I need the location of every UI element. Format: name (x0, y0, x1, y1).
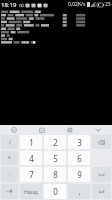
staticText: 5 (53, 153, 58, 164)
button[interactable]: Clipboard (28, 125, 56, 134)
button[interactable]: 6 (68, 151, 90, 165)
staticText: 0 (53, 186, 58, 197)
staticText: 8 (53, 169, 58, 180)
staticText: 3 (77, 137, 82, 148)
staticText: 1 (29, 137, 34, 148)
button[interactable]: 7 (20, 167, 42, 182)
button[interactable]: 0 (44, 184, 66, 199)
staticText: 18:19 (1, 1, 17, 9)
button[interactable]: 2 (44, 135, 66, 149)
button[interactable]: 4 (20, 151, 42, 165)
staticText: * (8, 155, 11, 162)
staticText: 6 (77, 153, 82, 164)
button[interactable]: / (1, 135, 18, 149)
staticText: 0,02К/s (68, 1, 86, 8)
button[interactable]: Space (92, 167, 111, 182)
staticText: . (78, 186, 81, 197)
button[interactable]: Settings (56, 125, 84, 134)
button[interactable]: 1 (20, 135, 42, 149)
button[interactable]: Назад (20, 184, 42, 199)
button[interactable]: Hide keyboard (84, 125, 112, 134)
button[interactable]: 5 (44, 151, 66, 165)
button[interactable]: 3 (68, 135, 90, 149)
staticText: 7 (29, 169, 34, 180)
staticText: 9 (77, 169, 82, 180)
staticText: 23 (105, 1, 111, 8)
staticText: - (9, 171, 11, 178)
button[interactable]: Backspace (92, 135, 111, 149)
button[interactable]: Emoji (0, 125, 28, 134)
button[interactable]: 9 (68, 167, 90, 182)
button[interactable]: 8 (44, 167, 66, 182)
button[interactable]: Enter (92, 184, 111, 199)
staticText: ~# (6, 188, 13, 195)
button[interactable]: * (1, 151, 18, 165)
staticText: 4 (29, 153, 34, 164)
staticText: / (9, 139, 11, 146)
staticText: 2 (53, 137, 58, 148)
staticText: Назад (24, 189, 38, 195)
button[interactable]: ~# (1, 184, 18, 199)
button[interactable]: . (68, 184, 90, 199)
